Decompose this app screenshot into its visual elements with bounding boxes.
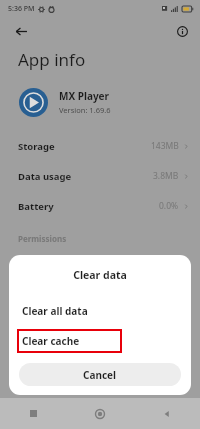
button[interactable]: Clear cache <box>17 329 122 353</box>
staticText: Version: 1.69.6 <box>59 105 111 115</box>
staticText: 143MB <box>151 140 179 152</box>
button[interactable]: Battery <box>0 191 200 221</box>
button[interactable]: Recents <box>0 398 66 429</box>
button[interactable]: Storage <box>0 131 200 161</box>
staticText: Storage <box>18 140 55 153</box>
staticText: Cancel <box>83 368 117 382</box>
staticText: Clear cache <box>22 334 80 348</box>
button[interactable]: Clear all data <box>9 298 191 323</box>
staticText: App info <box>18 48 86 71</box>
staticText: Data usage <box>18 170 72 183</box>
staticText: 3.8MB <box>153 170 179 182</box>
button[interactable]: Back <box>133 398 200 429</box>
button[interactable]: Data usage <box>0 161 200 191</box>
staticText: 5:36 PM <box>8 4 35 14</box>
button[interactable]: Back <box>10 20 32 42</box>
button[interactable]: App details <box>172 21 192 41</box>
staticText: Clear data <box>9 268 191 282</box>
staticText: 0.0% <box>159 200 179 212</box>
button[interactable]: Cancel <box>19 363 181 386</box>
button[interactable]: Home <box>66 398 133 429</box>
staticText: MX Player <box>59 89 110 103</box>
button[interactable]: MX Player <box>0 85 200 119</box>
staticText: Permissions <box>18 233 67 244</box>
staticText: Battery <box>18 200 54 213</box>
staticText: Clear all data <box>22 304 88 318</box>
